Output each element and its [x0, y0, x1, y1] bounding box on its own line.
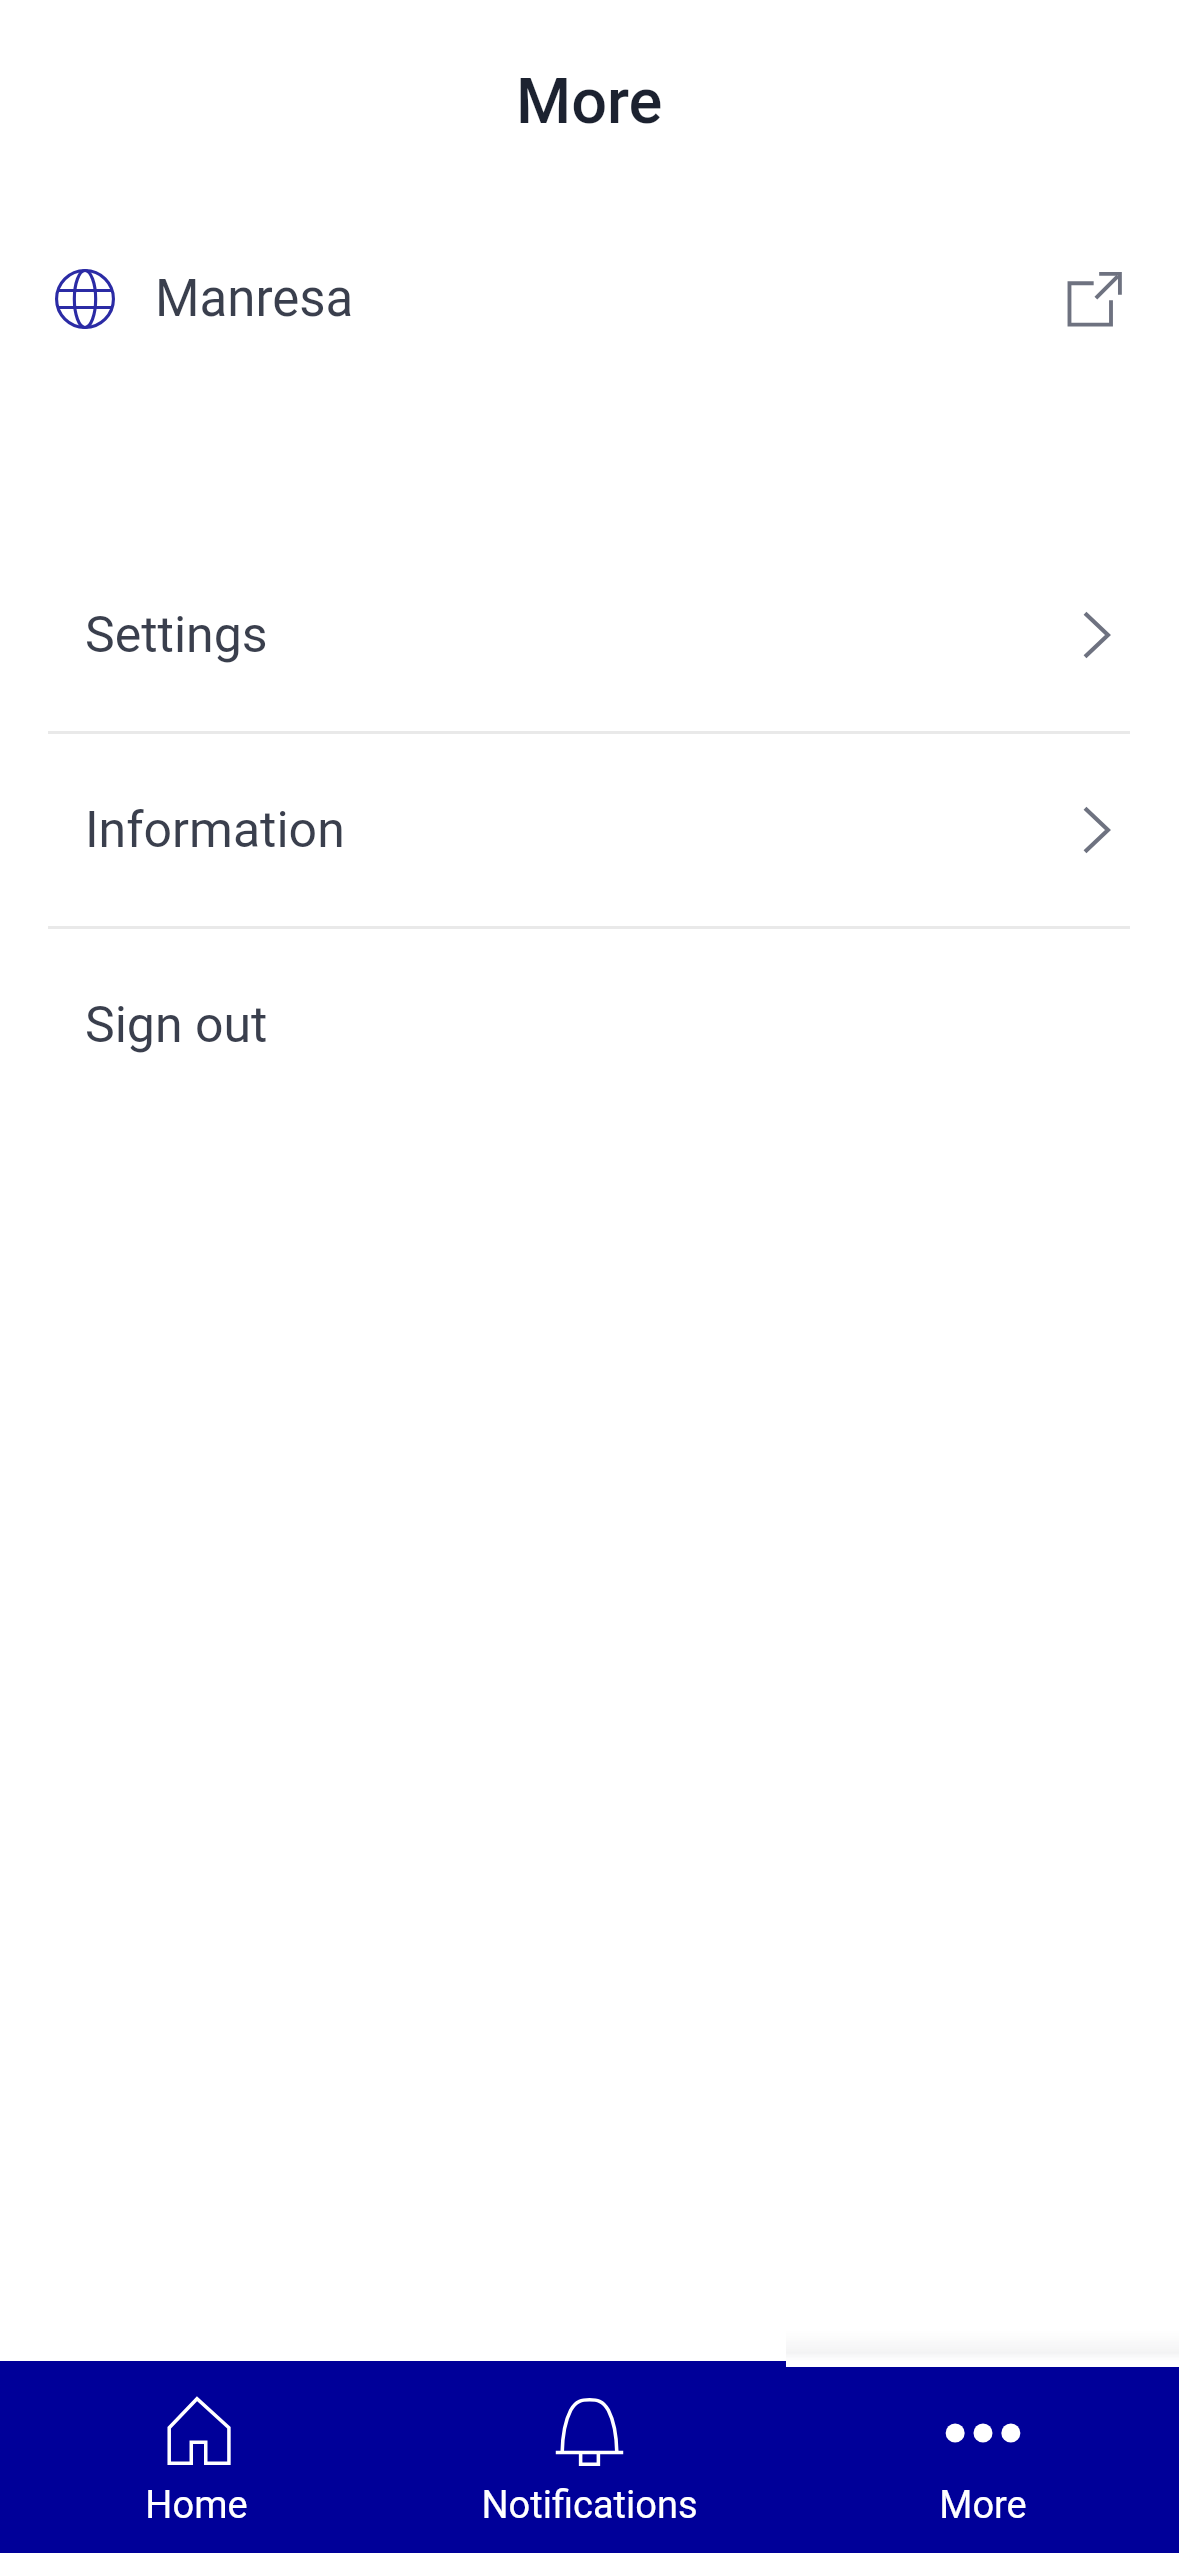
other: Open Settings	[1060, 610, 1110, 660]
staticText: Notifications	[481, 2483, 698, 2528]
button[interactable]: Information	[0, 734, 1179, 926]
other: Website	[55, 269, 115, 329]
staticText: Manresa	[155, 269, 354, 329]
other: Open in new window	[1067, 272, 1122, 327]
button[interactable]: Website	[0, 241, 1179, 357]
other: Open Information	[1060, 805, 1110, 855]
button[interactable]: More	[786, 2361, 1179, 2553]
staticText: Information	[85, 801, 345, 860]
staticText: Home	[145, 2483, 248, 2528]
button[interactable]: Settings	[0, 539, 1179, 731]
staticText: More	[516, 65, 663, 139]
button[interactable]: Sign out	[0, 929, 1179, 1121]
staticText: Settings	[85, 606, 268, 665]
staticText: Sign out	[85, 996, 268, 1055]
staticText: More	[939, 2483, 1027, 2528]
button[interactable]: Home	[0, 2361, 393, 2553]
button[interactable]: Notifications	[393, 2361, 786, 2553]
